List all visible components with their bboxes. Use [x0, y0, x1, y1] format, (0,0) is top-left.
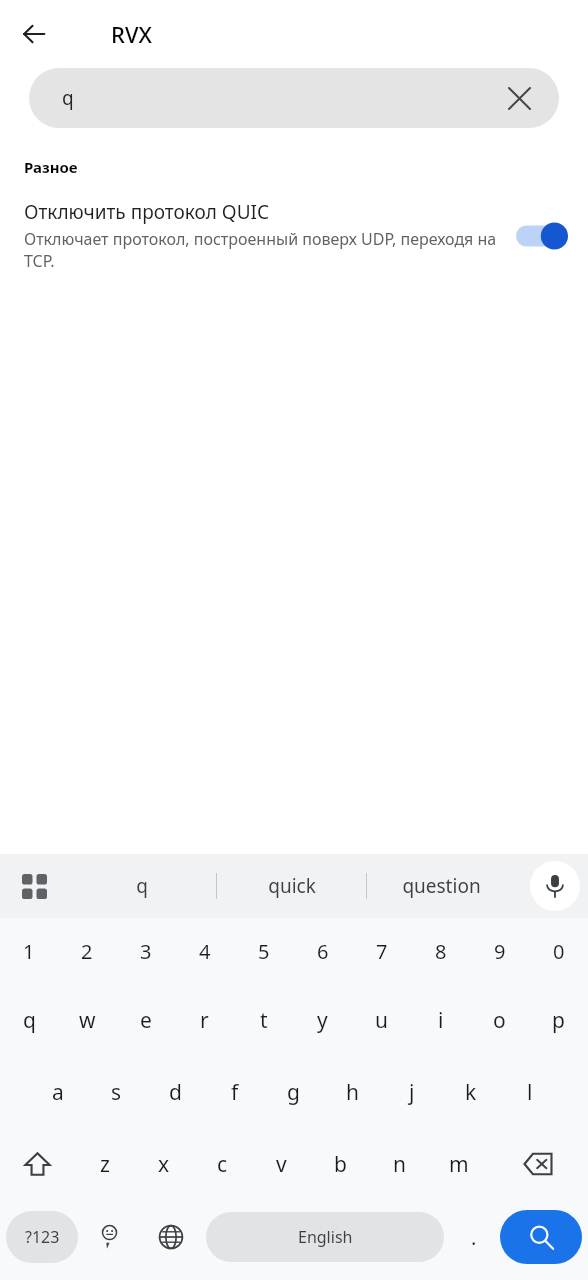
button[interactable]: i: [411, 984, 470, 1056]
button[interactable]: 1: [0, 918, 58, 984]
button[interactable]: Clear: [497, 76, 541, 120]
staticText: z: [100, 1150, 110, 1179]
staticText: t: [260, 1006, 268, 1035]
button[interactable]: ?123: [6, 1211, 78, 1263]
button[interactable]: r: [175, 984, 234, 1056]
staticText: 9: [494, 938, 506, 965]
staticText: u: [375, 1006, 388, 1035]
button[interactable]: .: [448, 1200, 500, 1274]
staticText: 0: [553, 938, 565, 965]
staticText: 4: [199, 938, 211, 965]
staticText: y: [317, 1006, 328, 1035]
button[interactable]: 4: [175, 918, 234, 984]
staticText: 3: [140, 938, 152, 965]
button[interactable]: Toggle: [516, 219, 568, 253]
staticText: 8: [435, 938, 447, 965]
button[interactable]: 6: [293, 918, 352, 984]
button[interactable]: 7: [352, 918, 411, 984]
button[interactable]: Backspace: [488, 1128, 588, 1200]
button[interactable]: Emoji: [78, 1200, 140, 1274]
button[interactable]: q: [0, 984, 58, 1056]
button[interactable]: 5: [234, 918, 293, 984]
staticText: x: [158, 1150, 170, 1179]
button[interactable]: 0: [529, 918, 588, 984]
staticText: 1: [23, 938, 35, 965]
button[interactable]: x: [134, 1128, 193, 1200]
button[interactable]: 9: [470, 918, 529, 984]
button[interactable]: Back: [10, 10, 58, 58]
button[interactable]: question: [367, 854, 516, 918]
staticText: ?123: [25, 1226, 60, 1248]
staticText: English: [298, 1226, 353, 1248]
button[interactable]: t: [234, 984, 293, 1056]
staticText: d: [169, 1078, 182, 1107]
staticText: s: [111, 1078, 122, 1107]
staticText: 5: [258, 938, 270, 965]
staticText: quick: [268, 873, 316, 899]
button[interactable]: Toolbar: [8, 860, 60, 912]
staticText: c: [217, 1150, 228, 1179]
button[interactable]: d: [146, 1056, 205, 1128]
button[interactable]: n: [370, 1128, 429, 1200]
button[interactable]: f: [205, 1056, 264, 1128]
staticText: q: [136, 873, 148, 899]
button[interactable]: c: [193, 1128, 252, 1200]
staticText: n: [393, 1150, 406, 1179]
button[interactable]: e: [116, 984, 175, 1056]
staticText: f: [231, 1078, 239, 1107]
staticText: r: [200, 1006, 209, 1035]
button[interactable]: y: [293, 984, 352, 1056]
button[interactable]: English: [206, 1212, 444, 1262]
button[interactable]: k: [441, 1056, 500, 1128]
staticText: i: [438, 1006, 444, 1035]
staticText: 7: [376, 938, 388, 965]
button[interactable]: l: [500, 1056, 559, 1128]
button[interactable]: h: [323, 1056, 382, 1128]
button[interactable]: b: [311, 1128, 370, 1200]
button[interactable]: v: [252, 1128, 311, 1200]
staticText: k: [465, 1078, 477, 1107]
button[interactable]: z: [75, 1128, 134, 1200]
staticText: e: [140, 1006, 152, 1035]
staticText: 2: [81, 938, 93, 965]
staticText: v: [276, 1150, 287, 1179]
button[interactable]: o: [470, 984, 529, 1056]
staticText: m: [449, 1150, 469, 1179]
staticText: h: [346, 1078, 359, 1107]
staticText: g: [287, 1078, 300, 1107]
button[interactable]: j: [382, 1056, 441, 1128]
button[interactable]: p: [529, 984, 588, 1056]
staticText: j: [409, 1078, 415, 1107]
button[interactable]: g: [264, 1056, 323, 1128]
staticText: q: [62, 85, 74, 111]
button[interactable]: Change language: [140, 1200, 202, 1274]
staticText: Отключить протокол QUIC: [24, 199, 270, 225]
button[interactable]: quick: [217, 854, 366, 918]
staticText: .: [471, 1224, 477, 1251]
button[interactable]: m: [429, 1128, 488, 1200]
button[interactable]: s: [87, 1056, 146, 1128]
button[interactable]: a: [28, 1056, 87, 1128]
button[interactable]: Shift: [0, 1128, 75, 1200]
button[interactable]: 3: [116, 918, 175, 984]
button[interactable]: q: [29, 68, 559, 128]
staticText: Разное: [24, 157, 78, 177]
staticText: l: [527, 1078, 533, 1107]
staticText: b: [334, 1150, 347, 1179]
staticText: p: [552, 1006, 565, 1035]
staticText: 6: [317, 938, 329, 965]
button[interactable]: Отключить протокол QUIC: [0, 199, 588, 272]
staticText: question: [402, 873, 481, 899]
staticText: Отключает протокол, построенный поверх U…: [24, 228, 502, 272]
button[interactable]: Voice input: [530, 861, 580, 911]
staticText: a: [52, 1078, 64, 1107]
button[interactable]: Search: [500, 1210, 582, 1264]
staticText: o: [493, 1006, 506, 1035]
button[interactable]: w: [58, 984, 116, 1056]
button[interactable]: q: [68, 854, 216, 918]
button[interactable]: 2: [58, 918, 116, 984]
staticText: w: [79, 1006, 96, 1035]
staticText: RVX: [111, 19, 152, 49]
button[interactable]: 8: [411, 918, 470, 984]
button[interactable]: u: [352, 984, 411, 1056]
